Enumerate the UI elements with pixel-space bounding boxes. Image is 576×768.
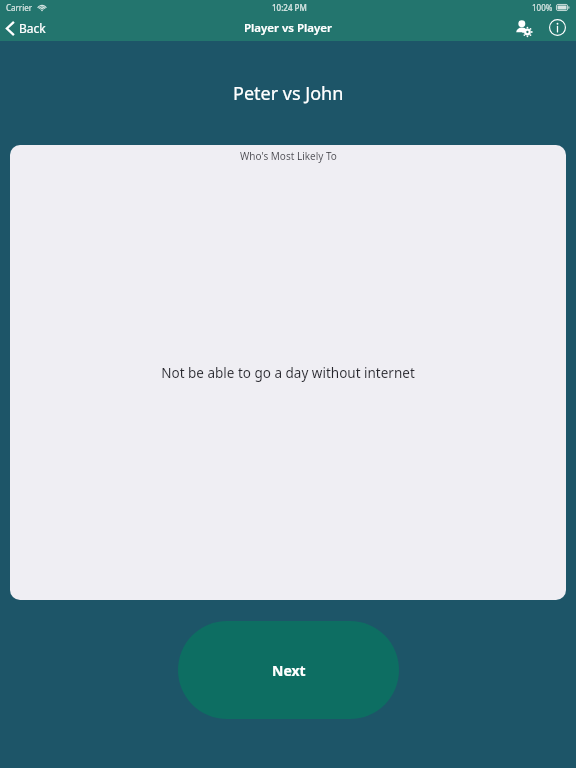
- staticText: Carrier: [6, 2, 33, 13]
- staticText: Next: [272, 661, 306, 680]
- button[interactable]: Add player: [508, 14, 537, 41]
- button[interactable]: Info: [543, 14, 572, 41]
- button[interactable]: Next: [178, 621, 399, 719]
- staticText: Not be able to go a day without internet: [161, 364, 415, 382]
- staticText: Player vs Player: [244, 20, 333, 36]
- button[interactable]: Back: [0, 18, 56, 38]
- staticText: 100%: [532, 2, 553, 13]
- button[interactable]: Who's Most Likely To: [10, 145, 566, 600]
- staticText: Peter vs John: [233, 81, 344, 106]
- staticText: Back: [19, 20, 46, 36]
- staticText: 10:24 PM: [272, 2, 307, 13]
- staticText: Who's Most Likely To: [240, 149, 337, 163]
